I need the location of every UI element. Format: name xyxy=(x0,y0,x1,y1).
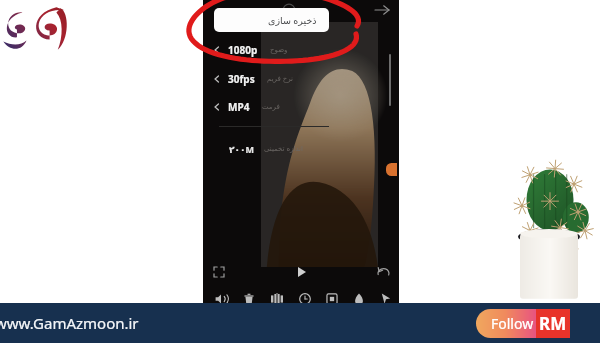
button[interactable]: Crop xyxy=(318,286,345,312)
staticText: اندازه تخمینی xyxy=(264,144,303,154)
staticText: 1080p xyxy=(228,43,258,57)
button[interactable]: Follow xyxy=(476,309,564,338)
button[interactable]: More xyxy=(372,286,399,312)
button[interactable]: Help xyxy=(282,3,296,17)
staticText: Follow xyxy=(491,314,534,333)
staticText: نرخ فریم xyxy=(267,74,293,84)
button[interactable]: 30fps xyxy=(203,67,399,91)
button[interactable]: ۲۰۰M xyxy=(203,138,399,160)
staticText: MP4 xyxy=(228,100,250,114)
button[interactable]: Next xyxy=(371,0,393,20)
staticText: ۲۰۰M xyxy=(229,143,254,155)
button[interactable]: Play xyxy=(292,263,310,281)
staticText: ذخیره سازی xyxy=(268,14,317,27)
staticText: وضوح xyxy=(270,46,288,54)
button[interactable]: Undo xyxy=(375,264,391,280)
button[interactable]: Fullscreen xyxy=(211,264,227,280)
button[interactable]: Split xyxy=(263,286,291,312)
staticText: RM xyxy=(539,312,567,335)
button[interactable]: Volume xyxy=(207,286,235,312)
staticText: فرمت xyxy=(262,103,280,111)
button[interactable]: ذخیره سازی xyxy=(214,8,329,32)
button[interactable]: 1080p xyxy=(203,38,399,62)
button[interactable]: Duration xyxy=(291,286,318,312)
button[interactable]: RM logo xyxy=(536,309,570,338)
button[interactable]: Delete xyxy=(235,286,263,312)
button[interactable]: MP4 xyxy=(203,95,399,119)
staticText: www.GamAzmoon.ir xyxy=(0,313,139,333)
staticText: 30fps xyxy=(228,72,255,86)
button[interactable]: Close xyxy=(209,2,225,18)
staticText: ذخیره سازی xyxy=(229,5,270,16)
button[interactable]: Filter xyxy=(345,286,372,312)
